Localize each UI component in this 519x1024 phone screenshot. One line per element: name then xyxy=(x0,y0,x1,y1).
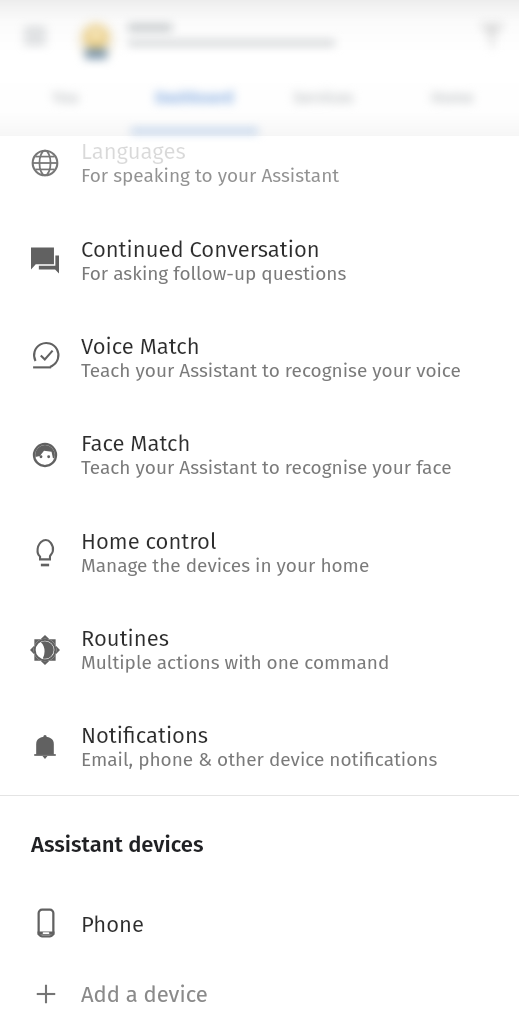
staticText: Home xyxy=(431,88,474,107)
staticText: Teach your Assistant to recognise your f… xyxy=(81,456,452,479)
staticText: Email, phone & other device notification… xyxy=(81,748,438,771)
staticText: Voice Match xyxy=(81,333,200,359)
staticText: Continued Conversation xyxy=(81,236,320,262)
staticText: Dashboard xyxy=(155,88,234,107)
staticText: For speaking to your Assistant xyxy=(81,164,340,187)
staticText: Teach your Assistant to recognise your v… xyxy=(81,359,461,382)
staticText: For asking follow-up questions xyxy=(81,262,347,285)
button[interactable]: Voice Match xyxy=(0,328,519,425)
staticText: Add a device xyxy=(81,981,208,1007)
button[interactable]: You xyxy=(1,80,129,136)
button[interactable]: Dashboard xyxy=(130,80,258,136)
button[interactable]: Languages xyxy=(0,133,519,230)
button[interactable]: Add a device xyxy=(0,964,519,1024)
staticText: Languages xyxy=(81,138,186,164)
button[interactable]: Home xyxy=(388,80,516,136)
button[interactable]: Services xyxy=(259,80,387,136)
staticText: Multiple actions with one command xyxy=(81,651,390,674)
button[interactable]: Phone xyxy=(0,889,519,957)
staticText: Services xyxy=(293,88,354,107)
button[interactable]: Routines xyxy=(0,620,519,717)
staticText: Home control xyxy=(81,528,217,554)
staticText: Routines xyxy=(81,625,169,651)
staticText: Face Match xyxy=(81,430,191,456)
button[interactable]: Navigation menu xyxy=(16,17,54,55)
staticText: Assistant devices xyxy=(31,831,204,857)
button[interactable]: Notifications xyxy=(0,717,519,814)
staticText: Manage the devices in your home xyxy=(81,554,370,577)
button[interactable]: Face Match xyxy=(0,425,519,522)
staticText: Notifications xyxy=(81,722,209,748)
staticText: You xyxy=(52,88,79,107)
staticText: Phone xyxy=(81,911,144,937)
button[interactable]: Home control xyxy=(0,523,519,620)
button[interactable]: Continued Conversation xyxy=(0,231,519,328)
button[interactable]: More options xyxy=(473,17,511,55)
button[interactable]: Account xyxy=(74,18,118,62)
